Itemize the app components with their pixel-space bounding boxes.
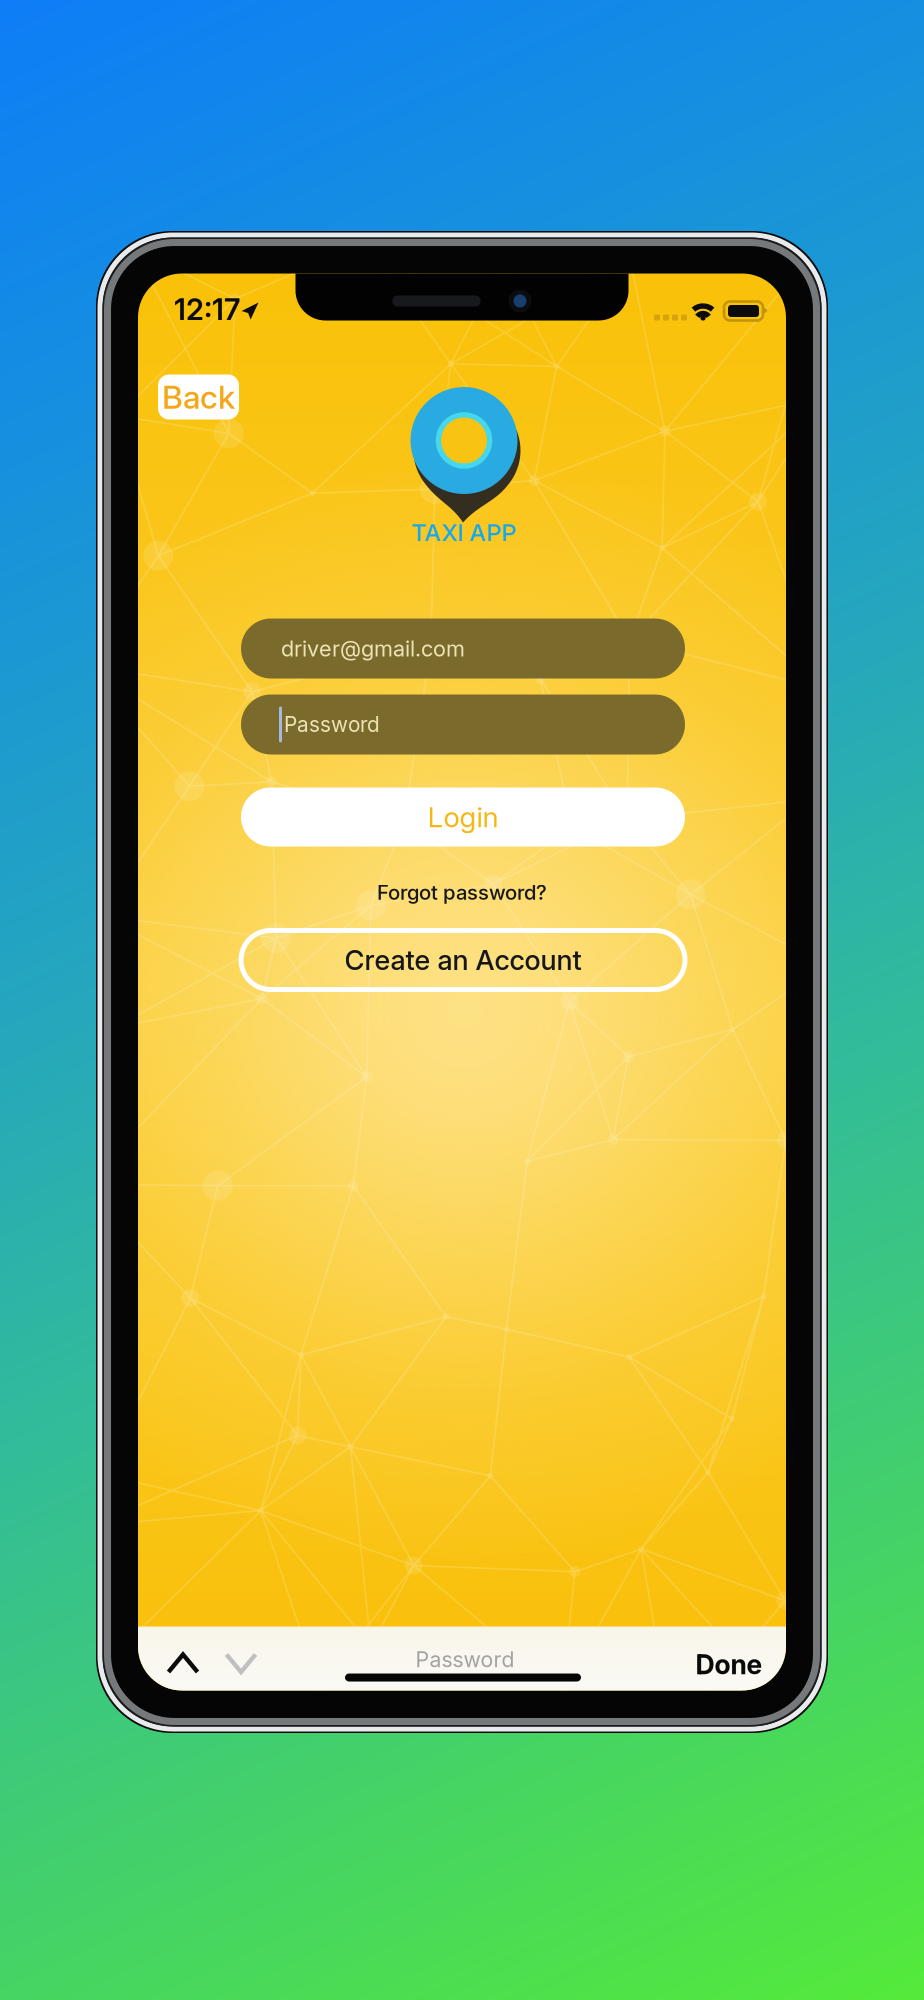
button[interactable]: Previous field — [154, 1639, 212, 1686]
button[interactable]: Create an Account — [241, 930, 685, 989]
staticText: driver@gmail.com — [281, 635, 465, 662]
button[interactable]: Forgot password? — [312, 872, 612, 912]
button[interactable]: Login — [241, 787, 685, 846]
staticText: TAXI APP — [411, 518, 516, 547]
staticText: Password — [415, 1647, 514, 1672]
button[interactable]: Next field — [212, 1639, 270, 1686]
staticText: Login — [427, 800, 498, 834]
button[interactable]: Done — [681, 1641, 777, 1687]
staticText: Create an Account — [344, 943, 581, 977]
staticText: Forgot password? — [377, 880, 547, 905]
button[interactable]: Back — [158, 374, 239, 419]
staticText: Password — [284, 712, 380, 737]
staticText: Back — [162, 378, 235, 416]
staticText: Done — [695, 1648, 762, 1681]
staticText: 12:17 — [174, 292, 240, 327]
